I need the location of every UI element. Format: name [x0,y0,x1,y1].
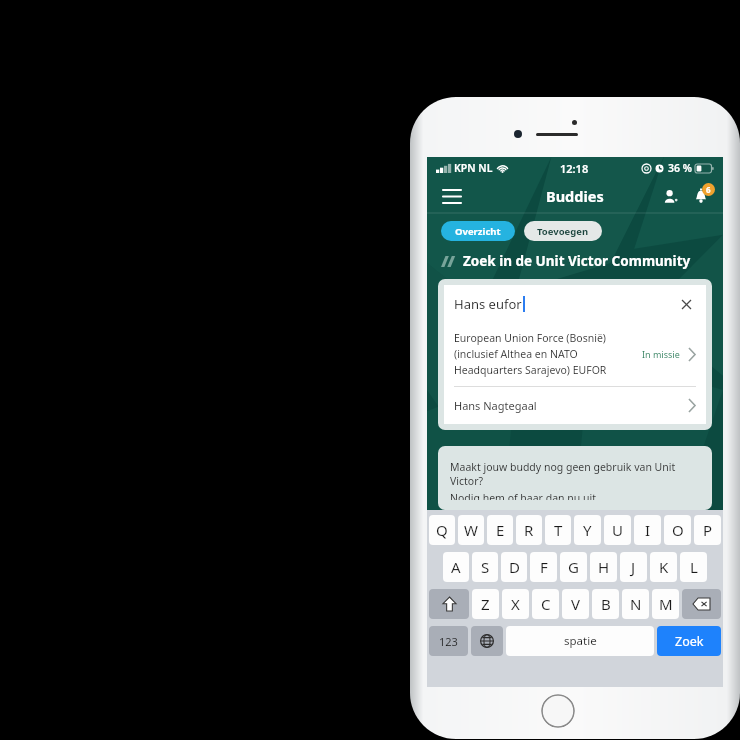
staticText: Y [583,520,592,540]
button[interactable]: Z [472,589,499,619]
button[interactable]: Maakt jouw buddy nog geen gebruik van Un… [450,460,700,500]
staticText: Nodig hem of haar dan nu uit [450,491,596,500]
staticText: (inclusief Althea en NATO [454,347,578,361]
button[interactable]: J [620,552,647,582]
staticText: Hans eufor [454,295,522,313]
button[interactable]: I [634,515,661,545]
staticText: B [601,594,611,614]
staticText: S [481,557,490,577]
staticText: 6 [706,184,711,195]
staticText: L [690,557,698,577]
staticText: U [612,520,623,540]
button[interactable]: Menu [435,179,469,213]
staticText: O [672,520,684,540]
staticText: M [659,594,673,614]
staticText: X [511,594,520,614]
button[interactable]: K [650,552,677,582]
staticText: J [631,557,636,577]
staticText: V [571,594,581,614]
staticText: KPN NL [454,161,493,175]
staticText: In missie [642,348,680,360]
staticText: Zoek in de Unit Victor Community [463,252,691,270]
staticText: N [630,594,642,614]
button[interactable]: D [501,552,527,582]
staticText: D [509,557,520,577]
button[interactable]: Hans eufor [454,285,696,322]
staticText: Buddies [546,186,604,206]
button[interactable]: Zoek [657,626,721,656]
button[interactable]: E [487,515,513,545]
staticText: G [568,557,579,577]
staticText: T [554,520,563,540]
staticText: Z [481,594,490,614]
staticText: P [703,520,713,540]
button[interactable]: Change keyboard language [471,626,503,656]
button[interactable]: G [560,552,587,582]
button[interactable]: C [532,589,559,619]
button[interactable]: Shift [429,589,469,619]
staticText: C [541,594,551,614]
button[interactable]: spatie [506,626,654,656]
staticText: spatie [564,633,597,649]
staticText: E [496,520,505,540]
button[interactable]: Q [429,515,455,545]
button[interactable]: S [472,552,498,582]
button[interactable]: X [502,589,529,619]
button[interactable]: W [458,515,484,545]
button[interactable]: Y [574,515,601,545]
staticText: A [451,557,461,577]
button[interactable]: P [694,515,721,545]
button[interactable]: L [680,552,707,582]
button[interactable]: Clear [676,294,696,314]
staticText: Q [436,520,448,540]
staticText: Maakt jouw buddy nog geen gebruik van Un… [450,460,700,488]
button[interactable]: B [592,589,619,619]
staticText: F [540,557,548,577]
button[interactable]: Overzicht [441,221,515,241]
button[interactable]: Backspace [682,589,721,619]
button[interactable]: Toevoegen [524,221,602,241]
staticText: K [659,557,669,577]
staticText: I [645,520,651,540]
button[interactable]: N [622,589,649,619]
staticText: R [524,520,534,540]
staticText: W [464,520,478,540]
button[interactable]: European Union Force (Bosnië) [444,322,706,386]
staticText: 36 % [668,161,692,175]
button[interactable]: Hans Nagtegaal [444,387,706,424]
button[interactable]: O [664,515,691,545]
staticText: H [598,557,610,577]
staticText: 123 [439,634,458,649]
staticText: Headquarters Sarajevo) EUFOR [454,363,607,377]
staticText: Overzicht [455,225,501,238]
button[interactable]: V [562,589,589,619]
button[interactable]: U [604,515,631,545]
staticText: Toevoegen [537,225,589,238]
button[interactable]: T [545,515,571,545]
button[interactable]: Contacts [655,181,685,211]
button[interactable]: F [530,552,557,582]
button[interactable]: Notifications [685,180,717,212]
staticText: Zoek [675,633,704,650]
button[interactable]: A [443,552,469,582]
button[interactable]: 123 [429,626,468,656]
button[interactable]: R [516,515,542,545]
staticText: 12:18 [560,161,589,176]
button[interactable]: M [652,589,679,619]
staticText: Hans Nagtegaal [454,398,537,413]
button[interactable]: H [590,552,617,582]
staticText: European Union Force (Bosnië) [454,331,606,345]
